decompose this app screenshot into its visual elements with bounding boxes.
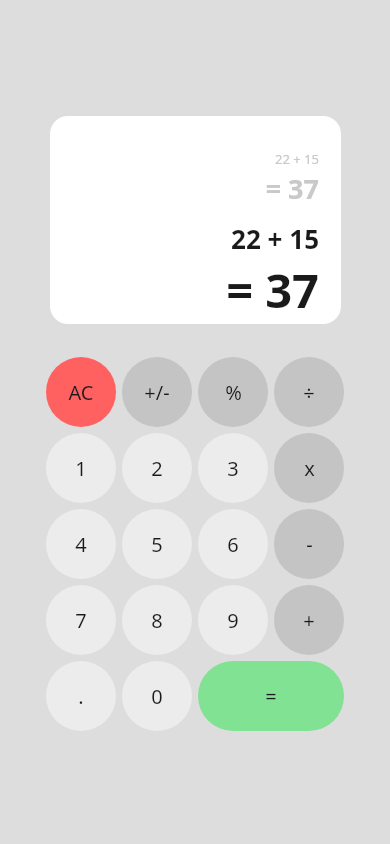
button[interactable]: + (274, 585, 344, 655)
staticText: - (306, 531, 313, 558)
button[interactable]: Equals (198, 661, 344, 731)
staticText: 7 (75, 607, 87, 634)
button[interactable]: 2 (122, 433, 192, 503)
staticText: AC (68, 379, 94, 406)
staticText: 0 (151, 683, 163, 710)
button[interactable]: 22 + 15 (50, 116, 341, 324)
button[interactable]: 6 (198, 509, 268, 579)
staticText: +/- (144, 379, 170, 406)
staticText: 3 (227, 455, 239, 482)
button[interactable]: 0 (122, 661, 192, 731)
staticText: 4 (75, 531, 87, 558)
staticText: 22 + 15 (231, 221, 319, 256)
button[interactable]: x (274, 433, 344, 503)
staticText: 2 (151, 455, 163, 482)
staticText: % (225, 379, 242, 406)
staticText: . (78, 683, 84, 710)
button[interactable]: 7 (46, 585, 116, 655)
staticText: ÷ (303, 379, 315, 406)
button[interactable]: +/- (122, 357, 192, 427)
button[interactable]: - (274, 509, 344, 579)
staticText: 1 (75, 455, 87, 482)
button[interactable]: ÷ (274, 357, 344, 427)
button[interactable]: 4 (46, 509, 116, 579)
staticText: = (265, 683, 277, 710)
button[interactable]: AC (46, 357, 116, 427)
staticText: 22 + 15 (275, 150, 319, 168)
staticText: 5 (151, 531, 163, 558)
staticText: = 37 (265, 170, 319, 207)
staticText: 9 (227, 607, 239, 634)
staticText: x (304, 455, 315, 482)
staticText: + (303, 607, 315, 634)
button[interactable]: % (198, 357, 268, 427)
button[interactable]: 3 (198, 433, 268, 503)
button[interactable]: 5 (122, 509, 192, 579)
staticText: = 37 (226, 258, 319, 322)
staticText: 8 (151, 607, 163, 634)
button[interactable]: 8 (122, 585, 192, 655)
button[interactable]: 9 (198, 585, 268, 655)
button[interactable]: . (46, 661, 116, 731)
button[interactable]: 1 (46, 433, 116, 503)
staticText: 6 (227, 531, 239, 558)
